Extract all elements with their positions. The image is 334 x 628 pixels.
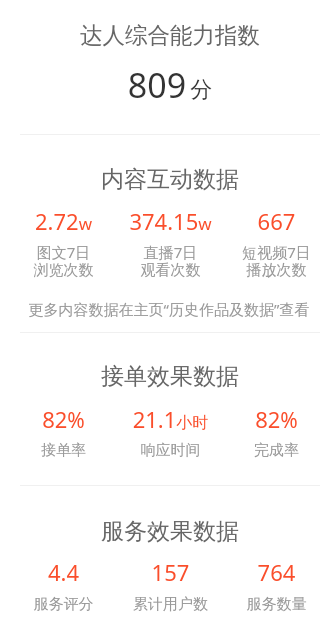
button[interactable]: 667 — [223, 206, 330, 282]
staticText: 直播7日 — [117, 242, 224, 262]
staticText: 浏览次数 — [10, 261, 117, 280]
staticText: 短视频7日 — [223, 242, 330, 262]
button[interactable]: 更多内容数据在主页“历史作品及数据”查看 — [9, 293, 329, 323]
staticText: 接单效果数据 — [20, 362, 320, 391]
staticText: 服务数量 — [223, 595, 330, 614]
staticText: 图文7日 — [10, 242, 117, 262]
staticText: 4.4 — [10, 557, 117, 587]
staticText: 157 — [117, 557, 224, 587]
button[interactable]: 764 — [223, 557, 330, 616]
staticText: 服务效果数据 — [20, 517, 320, 546]
button[interactable]: 21.1小时 — [117, 404, 224, 462]
staticText: 82% — [10, 404, 117, 434]
staticText: 82% — [223, 404, 330, 434]
staticText: 764 — [223, 557, 330, 587]
staticText: 接单率 — [10, 441, 117, 460]
staticText: 观看次数 — [117, 261, 224, 280]
staticText: 374.15w — [117, 206, 224, 236]
staticText: 响应时间 — [117, 441, 224, 460]
staticText: 累计用户数 — [117, 595, 224, 614]
staticText: 更多内容数据在主页“历史作品及数据”查看 — [9, 299, 329, 319]
staticText: 667 — [223, 206, 330, 236]
staticText: 完成率 — [223, 441, 330, 460]
button[interactable]: 374.15w — [117, 206, 224, 282]
button[interactable]: 82% — [223, 404, 330, 462]
staticText: 服务评分 — [10, 595, 117, 614]
button[interactable]: 4.4 — [10, 557, 117, 616]
button[interactable]: 2.72w — [10, 206, 117, 282]
staticText: 2.72w — [10, 206, 117, 236]
button[interactable]: 157 — [117, 557, 224, 616]
staticText: 达人综合能力指数 — [20, 21, 320, 49]
staticText: 809 分 — [20, 62, 320, 108]
staticText: 播放次数 — [223, 261, 330, 280]
staticText: 内容互动数据 — [20, 165, 320, 194]
staticText: 21.1小时 — [117, 404, 224, 434]
button[interactable]: 82% — [10, 404, 117, 462]
